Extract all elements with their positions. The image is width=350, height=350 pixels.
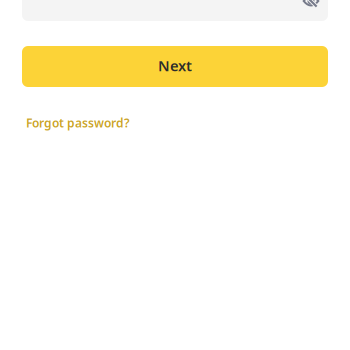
button[interactable]: Forgot password? xyxy=(22,111,134,135)
staticText: Next xyxy=(158,56,192,75)
button[interactable]: Next xyxy=(22,46,328,87)
button[interactable]: Hide password xyxy=(297,0,325,15)
staticText: Forgot password? xyxy=(26,115,130,131)
